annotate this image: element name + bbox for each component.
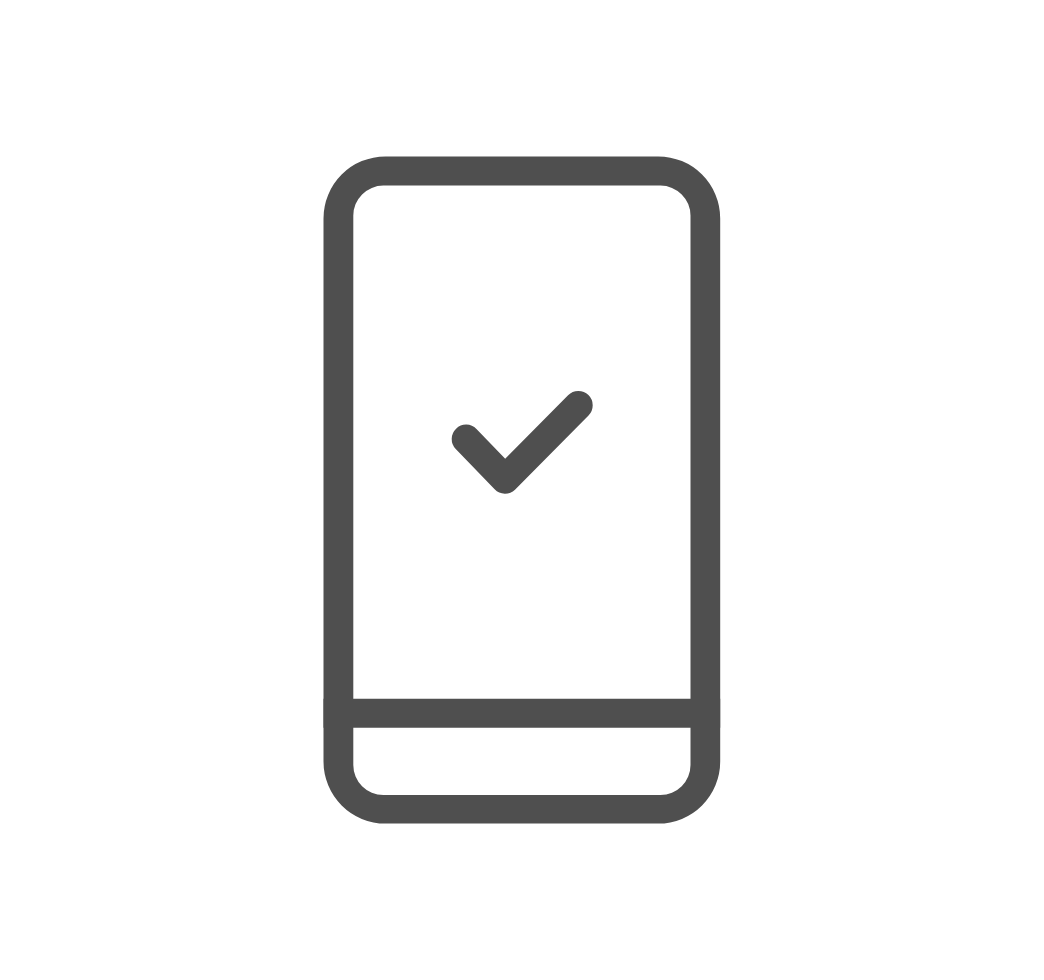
button[interactable]: Phone verified [324, 156, 721, 823]
